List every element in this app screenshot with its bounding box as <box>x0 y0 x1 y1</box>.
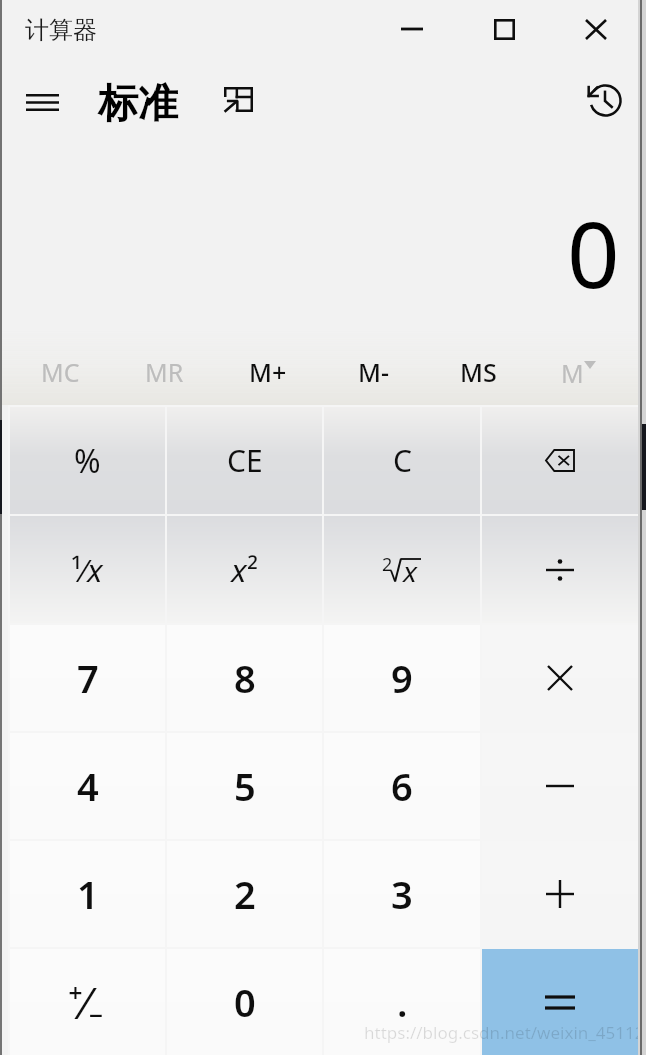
staticText: M <box>561 356 584 388</box>
other: Add <box>546 880 574 908</box>
staticText: 标准 <box>98 78 178 128</box>
other: Backspace <box>545 449 575 472</box>
staticText: MS <box>460 355 497 389</box>
other: Divide <box>546 556 574 584</box>
staticText: . <box>397 976 408 1028</box>
button[interactable]: MR <box>112 341 216 403</box>
staticText: 6 <box>391 760 413 812</box>
staticText: 8 <box>234 652 256 704</box>
staticText: CE <box>227 440 263 481</box>
staticText: 5 <box>234 760 256 812</box>
staticText: 0 <box>567 190 620 315</box>
button[interactable]: % <box>10 407 165 514</box>
button[interactable]: Memory list <box>528 341 632 403</box>
other: Square root <box>382 553 422 587</box>
button[interactable]: 9 <box>324 625 480 731</box>
button[interactable]: 1 <box>10 841 165 947</box>
button[interactable]: Keep on top <box>224 87 253 112</box>
staticText: 0 <box>234 976 256 1028</box>
staticText: 2 <box>234 868 256 920</box>
staticText: 2 <box>382 552 393 577</box>
staticText: 计算器 <box>25 15 97 45</box>
button[interactable]: C <box>324 407 480 514</box>
button[interactable]: 0 <box>167 949 322 1055</box>
button[interactable]: Maximize <box>458 0 550 58</box>
button[interactable]: Backspace <box>482 407 638 514</box>
button[interactable]: 6 <box>324 733 480 839</box>
staticText: 4 <box>77 760 99 812</box>
staticText: C <box>393 440 412 481</box>
button[interactable]: 5 <box>167 733 322 839</box>
button[interactable]: Close <box>550 0 642 58</box>
other: Multiply <box>548 666 572 690</box>
button[interactable]: M- <box>321 341 425 403</box>
button[interactable]: Add <box>482 841 638 947</box>
button[interactable]: 2 <box>167 841 322 947</box>
button[interactable]: CE <box>167 407 322 514</box>
button[interactable]: Menu <box>10 66 74 138</box>
button[interactable]: Equals <box>482 949 638 1055</box>
button[interactable]: 4 <box>10 733 165 839</box>
staticText: ⁺⁄₋ <box>68 972 104 1032</box>
button[interactable]: 𝑥² <box>167 516 322 623</box>
button[interactable]: Multiply <box>482 625 638 731</box>
other: Subtract <box>546 784 574 788</box>
staticText: M+ <box>249 355 287 389</box>
button[interactable]: History <box>585 81 623 119</box>
staticText: 1 <box>77 868 99 920</box>
button[interactable]: 7 <box>10 625 165 731</box>
staticText: 𝑥² <box>230 549 259 591</box>
staticText: % <box>74 439 101 483</box>
button[interactable]: . <box>324 949 480 1055</box>
button[interactable]: MS <box>426 341 530 403</box>
staticText: ¹⁄𝑥 <box>71 549 104 591</box>
button[interactable]: Divide <box>482 516 638 623</box>
staticText: 9 <box>391 652 413 704</box>
staticText: MC <box>41 355 80 389</box>
button[interactable]: 8 <box>167 625 322 731</box>
button[interactable]: 3 <box>324 841 480 947</box>
button[interactable]: M+ <box>216 341 320 403</box>
staticText: https://blog.csdn.net/weixin_45112130 <box>364 1021 646 1044</box>
button[interactable]: Subtract <box>482 733 638 839</box>
staticText: 7 <box>77 652 99 704</box>
staticText: MR <box>145 355 184 389</box>
button[interactable]: Minimize <box>366 0 458 58</box>
staticText: 𝑥 <box>402 560 418 588</box>
other: Equals <box>545 995 575 1010</box>
button[interactable]: MC <box>8 341 112 403</box>
staticText: M- <box>358 355 389 389</box>
button[interactable]: Square root <box>324 516 480 623</box>
button[interactable]: ¹⁄𝑥 <box>10 516 165 623</box>
button[interactable]: ⁺⁄₋ <box>10 949 165 1055</box>
staticText: 3 <box>391 868 413 920</box>
